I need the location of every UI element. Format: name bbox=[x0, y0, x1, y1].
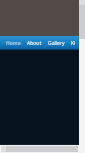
staticText: Home bbox=[6, 40, 21, 47]
staticText: About bbox=[27, 40, 42, 47]
button[interactable]: Gallery bbox=[45, 36, 68, 50]
other: Horizontal scrollbar bbox=[0, 145, 85, 153]
button[interactable]: Kits bbox=[68, 36, 79, 50]
staticText: Kits bbox=[71, 40, 76, 47]
button[interactable]: Home bbox=[3, 36, 24, 50]
staticText: Gallery bbox=[48, 40, 65, 47]
other: Vertical scrollbar bbox=[79, 0, 85, 153]
button[interactable]: About bbox=[24, 36, 45, 50]
